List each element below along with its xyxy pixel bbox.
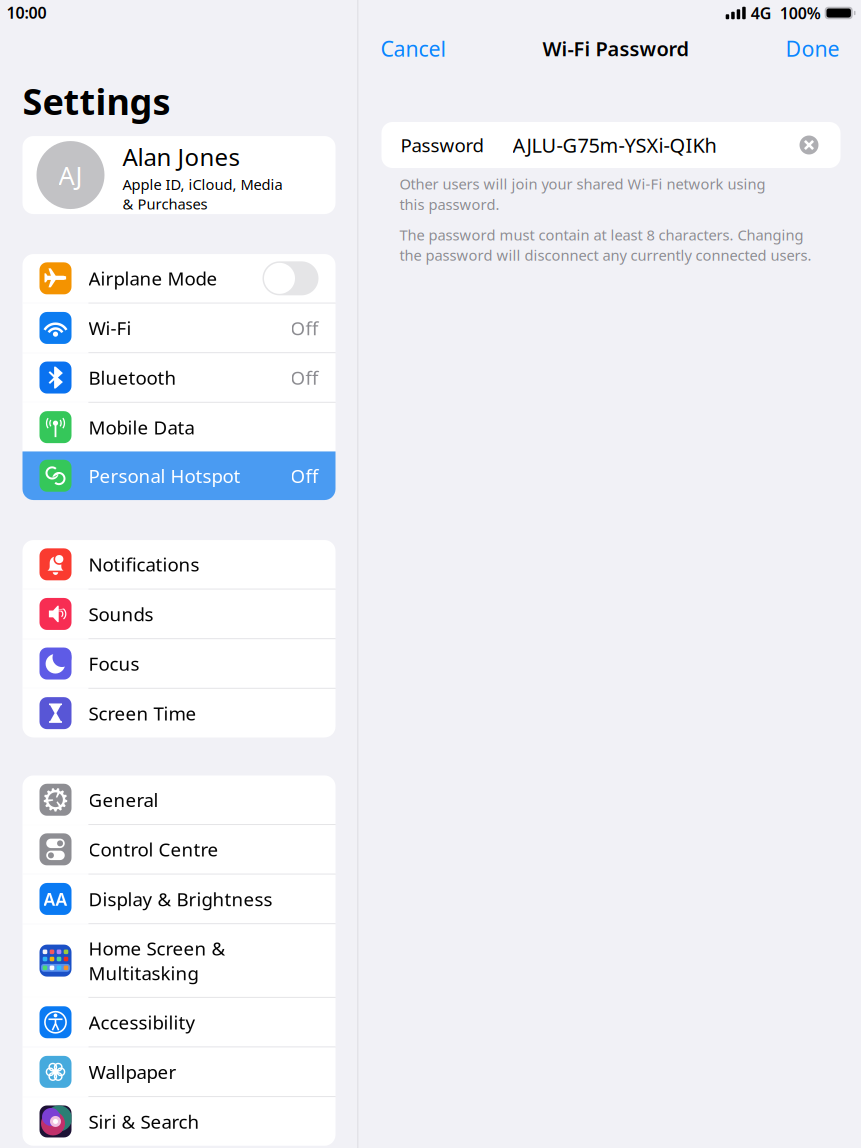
button[interactable]: Clear text (799, 135, 840, 154)
button[interactable]: AJ (22, 136, 335, 214)
staticText: Airplane Mode (88, 266, 217, 291)
button[interactable]: Airplane Mode (22, 254, 335, 303)
staticText: 100% (780, 2, 821, 24)
staticText: Off (290, 463, 318, 488)
staticText: Sounds (88, 602, 153, 626)
button[interactable]: Home Screen & (22, 924, 335, 997)
staticText: Mobile Data (88, 415, 194, 440)
button[interactable]: Cancel (358, 34, 446, 63)
staticText: Done (785, 34, 839, 63)
staticText: Display & Brightness (88, 887, 272, 911)
button[interactable]: Wi-Fi (22, 304, 335, 352)
staticText: Cancel (380, 34, 446, 63)
staticText: AA (43, 887, 67, 910)
staticText: Bluetooth (88, 365, 176, 390)
button[interactable]: Mobile Data (22, 403, 335, 451)
staticText: Multitasking (88, 961, 198, 985)
button[interactable]: Personal Hotspot (22, 451, 335, 500)
staticText: AJLU-G75m-YSXi-QIKh (512, 132, 716, 158)
staticText: Home Screen & (88, 936, 225, 961)
staticText: The password must contain at least 8 cha… (399, 225, 803, 244)
staticText: Wi-Fi Password (542, 35, 689, 62)
button[interactable]: Screen Time (22, 689, 335, 737)
button[interactable]: Sounds (22, 590, 335, 638)
staticText: General (88, 787, 158, 812)
staticText: Off (290, 316, 318, 340)
button[interactable]: Wallpaper (22, 1048, 335, 1096)
staticText: Notifications (88, 552, 199, 577)
staticText: this password. (399, 194, 499, 214)
staticText: Settings (22, 77, 170, 125)
staticText: Siri & Search (88, 1109, 199, 1134)
button[interactable]: Control Centre (22, 825, 335, 874)
button[interactable]: Done (785, 34, 861, 63)
staticText: AJ (58, 158, 82, 192)
staticText: Off (290, 365, 318, 390)
button[interactable]: Focus (22, 639, 335, 688)
staticText: 4G (751, 2, 772, 24)
staticText: Apple ID, iCloud, Media (122, 174, 282, 194)
button[interactable]: Accessibility (22, 998, 335, 1047)
staticText: Focus (88, 651, 139, 676)
staticText: Other users will join your shared Wi-Fi … (399, 174, 765, 193)
staticText: Password (400, 133, 483, 157)
staticText: the password will disconnect any current… (399, 245, 811, 265)
staticText: Control Centre (88, 837, 218, 862)
staticText: & Purchases (122, 194, 207, 213)
staticText: Accessibility (88, 1010, 195, 1035)
staticText: Alan Jones (122, 141, 239, 172)
button[interactable]: General (22, 775, 335, 824)
staticText: 10:00 (6, 2, 46, 23)
button[interactable]: Notifications (22, 540, 335, 589)
staticText: Wallpaper (88, 1059, 176, 1084)
staticText: Personal Hotspot (88, 463, 240, 488)
staticText: Screen Time (88, 701, 196, 726)
staticText: Wi-Fi (88, 316, 131, 340)
button[interactable]: AA (22, 875, 335, 923)
button[interactable]: Siri & Search (22, 1097, 335, 1146)
button[interactable]: Bluetooth (22, 353, 335, 402)
